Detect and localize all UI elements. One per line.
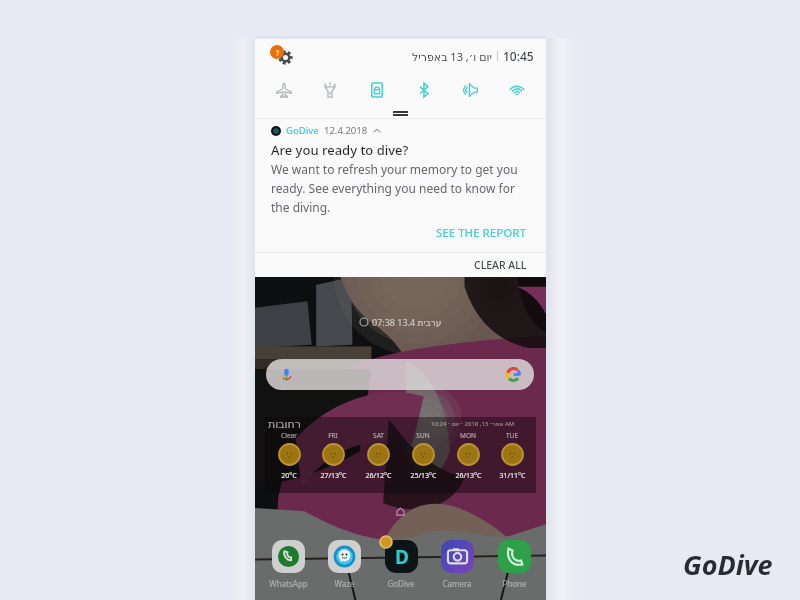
button[interactable]: Screen lock: [359, 72, 395, 107]
button[interactable]: Sound: [453, 72, 489, 107]
staticText: D: [395, 544, 409, 570]
button[interactable]: Settings: [270, 45, 294, 69]
staticText: MON: [460, 431, 476, 440]
staticText: 27/13°C: [320, 471, 347, 481]
staticText: 10:45: [503, 48, 534, 64]
staticText: SUN: [416, 431, 430, 440]
staticText: GoDive: [286, 124, 319, 137]
button[interactable]: SEE THE REPORT: [255, 224, 546, 252]
staticText: רחובות: [268, 418, 301, 431]
staticText: GoDive: [683, 546, 773, 583]
staticText: Are you ready to dive?: [271, 141, 409, 159]
button[interactable]: Home: [391, 502, 410, 521]
staticText: Camera: [442, 578, 472, 589]
staticText: 31/11°C: [499, 471, 526, 481]
button[interactable]: Phone: [490, 535, 538, 589]
staticText: 1: [275, 47, 280, 59]
staticText: Phone: [502, 578, 527, 589]
button[interactable]: Airplane mode: [266, 72, 302, 107]
staticText: WhatsApp: [269, 578, 308, 589]
button[interactable]: Flashlight: [312, 72, 348, 107]
staticText: ערבית 13.4 07:38: [372, 316, 442, 328]
button[interactable]: GoDive: [255, 119, 546, 215]
button[interactable]: WhatsApp: [264, 535, 312, 589]
button[interactable]: Wi-Fi: [499, 72, 535, 107]
button[interactable]: Camera: [433, 535, 481, 589]
staticText: FRI: [328, 431, 338, 440]
staticText: SAT: [373, 431, 384, 440]
staticText: TUE: [506, 431, 518, 440]
button[interactable]: Bluetooth: [406, 72, 442, 107]
staticText: 20°C: [281, 471, 297, 481]
staticText: 26/13°C: [455, 471, 482, 481]
staticText: 12.4.2018: [324, 124, 368, 137]
staticText: Clear: [281, 431, 297, 440]
staticText: 25/13°C: [410, 471, 437, 481]
staticText: Waze: [334, 578, 355, 589]
staticText: 26/12°C: [365, 471, 392, 481]
button[interactable]: CLEAR ALL: [255, 253, 546, 277]
staticText: GoDive: [387, 578, 415, 589]
button[interactable]: D: [377, 535, 425, 589]
staticText: יום ו׳, 13 באפריל: [412, 49, 492, 64]
staticText: We want to refresh your memory to get yo…: [271, 161, 530, 215]
staticText: SEE THE REPORT: [436, 225, 527, 241]
button[interactable]: רחובות: [265, 417, 536, 493]
button[interactable]: Search: [266, 359, 534, 390]
button[interactable]: Waze: [320, 535, 368, 589]
staticText: אפר׳ 13, 2018 ׳ יום ׳ 10:24 AM: [431, 420, 515, 428]
staticText: CLEAR ALL: [474, 258, 527, 272]
